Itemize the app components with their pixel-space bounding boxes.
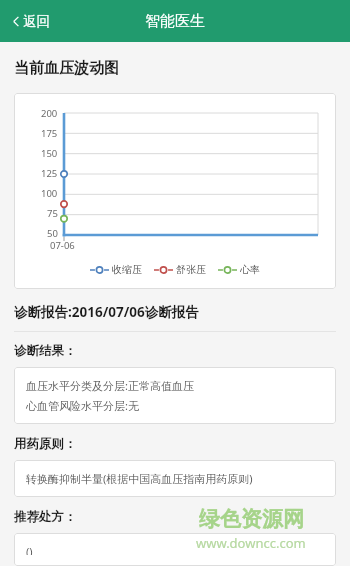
staticText: 推荐处方： xyxy=(14,509,77,525)
staticText: 心血管风险水平分层:无 xyxy=(26,398,139,413)
staticText: 100 xyxy=(41,187,58,200)
staticText: 转换酶抑制半量(根据中国高血压指南用药原则) xyxy=(26,471,253,486)
staticText: 200 xyxy=(41,107,58,120)
staticText: 收缩压 xyxy=(112,263,142,276)
staticText: 75 xyxy=(47,207,58,220)
staticText: 诊断结果： xyxy=(14,343,77,359)
other: Back xyxy=(13,16,19,27)
staticText: 150 xyxy=(41,147,58,160)
staticText: 125 xyxy=(41,167,58,180)
staticText: 返回 xyxy=(23,13,50,30)
staticText: 175 xyxy=(41,127,58,140)
staticText: 07-06 xyxy=(50,239,75,252)
button[interactable]: Back xyxy=(0,5,64,38)
staticText: () xyxy=(26,544,33,555)
staticText: 当前血压波动图 xyxy=(14,59,119,78)
button[interactable]: () xyxy=(14,533,336,566)
staticText: 智能医生 xyxy=(145,12,205,31)
staticText: 舒张压 xyxy=(176,263,206,276)
staticText: 心率 xyxy=(240,263,260,276)
staticText: 50 xyxy=(47,227,58,240)
staticText: 绿色资源网 xyxy=(199,506,304,532)
button[interactable]: 血压水平分类及分层:正常高值血压 xyxy=(14,367,336,424)
button[interactable]: 转换酶抑制半量(根据中国高血压指南用药原则) xyxy=(14,460,336,497)
staticText: 诊断报告:2016/07/06诊断报告 xyxy=(14,303,199,321)
staticText: www.downcc.com xyxy=(196,534,306,552)
staticText: 用药原则： xyxy=(14,436,77,452)
staticText: 血压水平分类及分层:正常高值血压 xyxy=(26,378,194,393)
